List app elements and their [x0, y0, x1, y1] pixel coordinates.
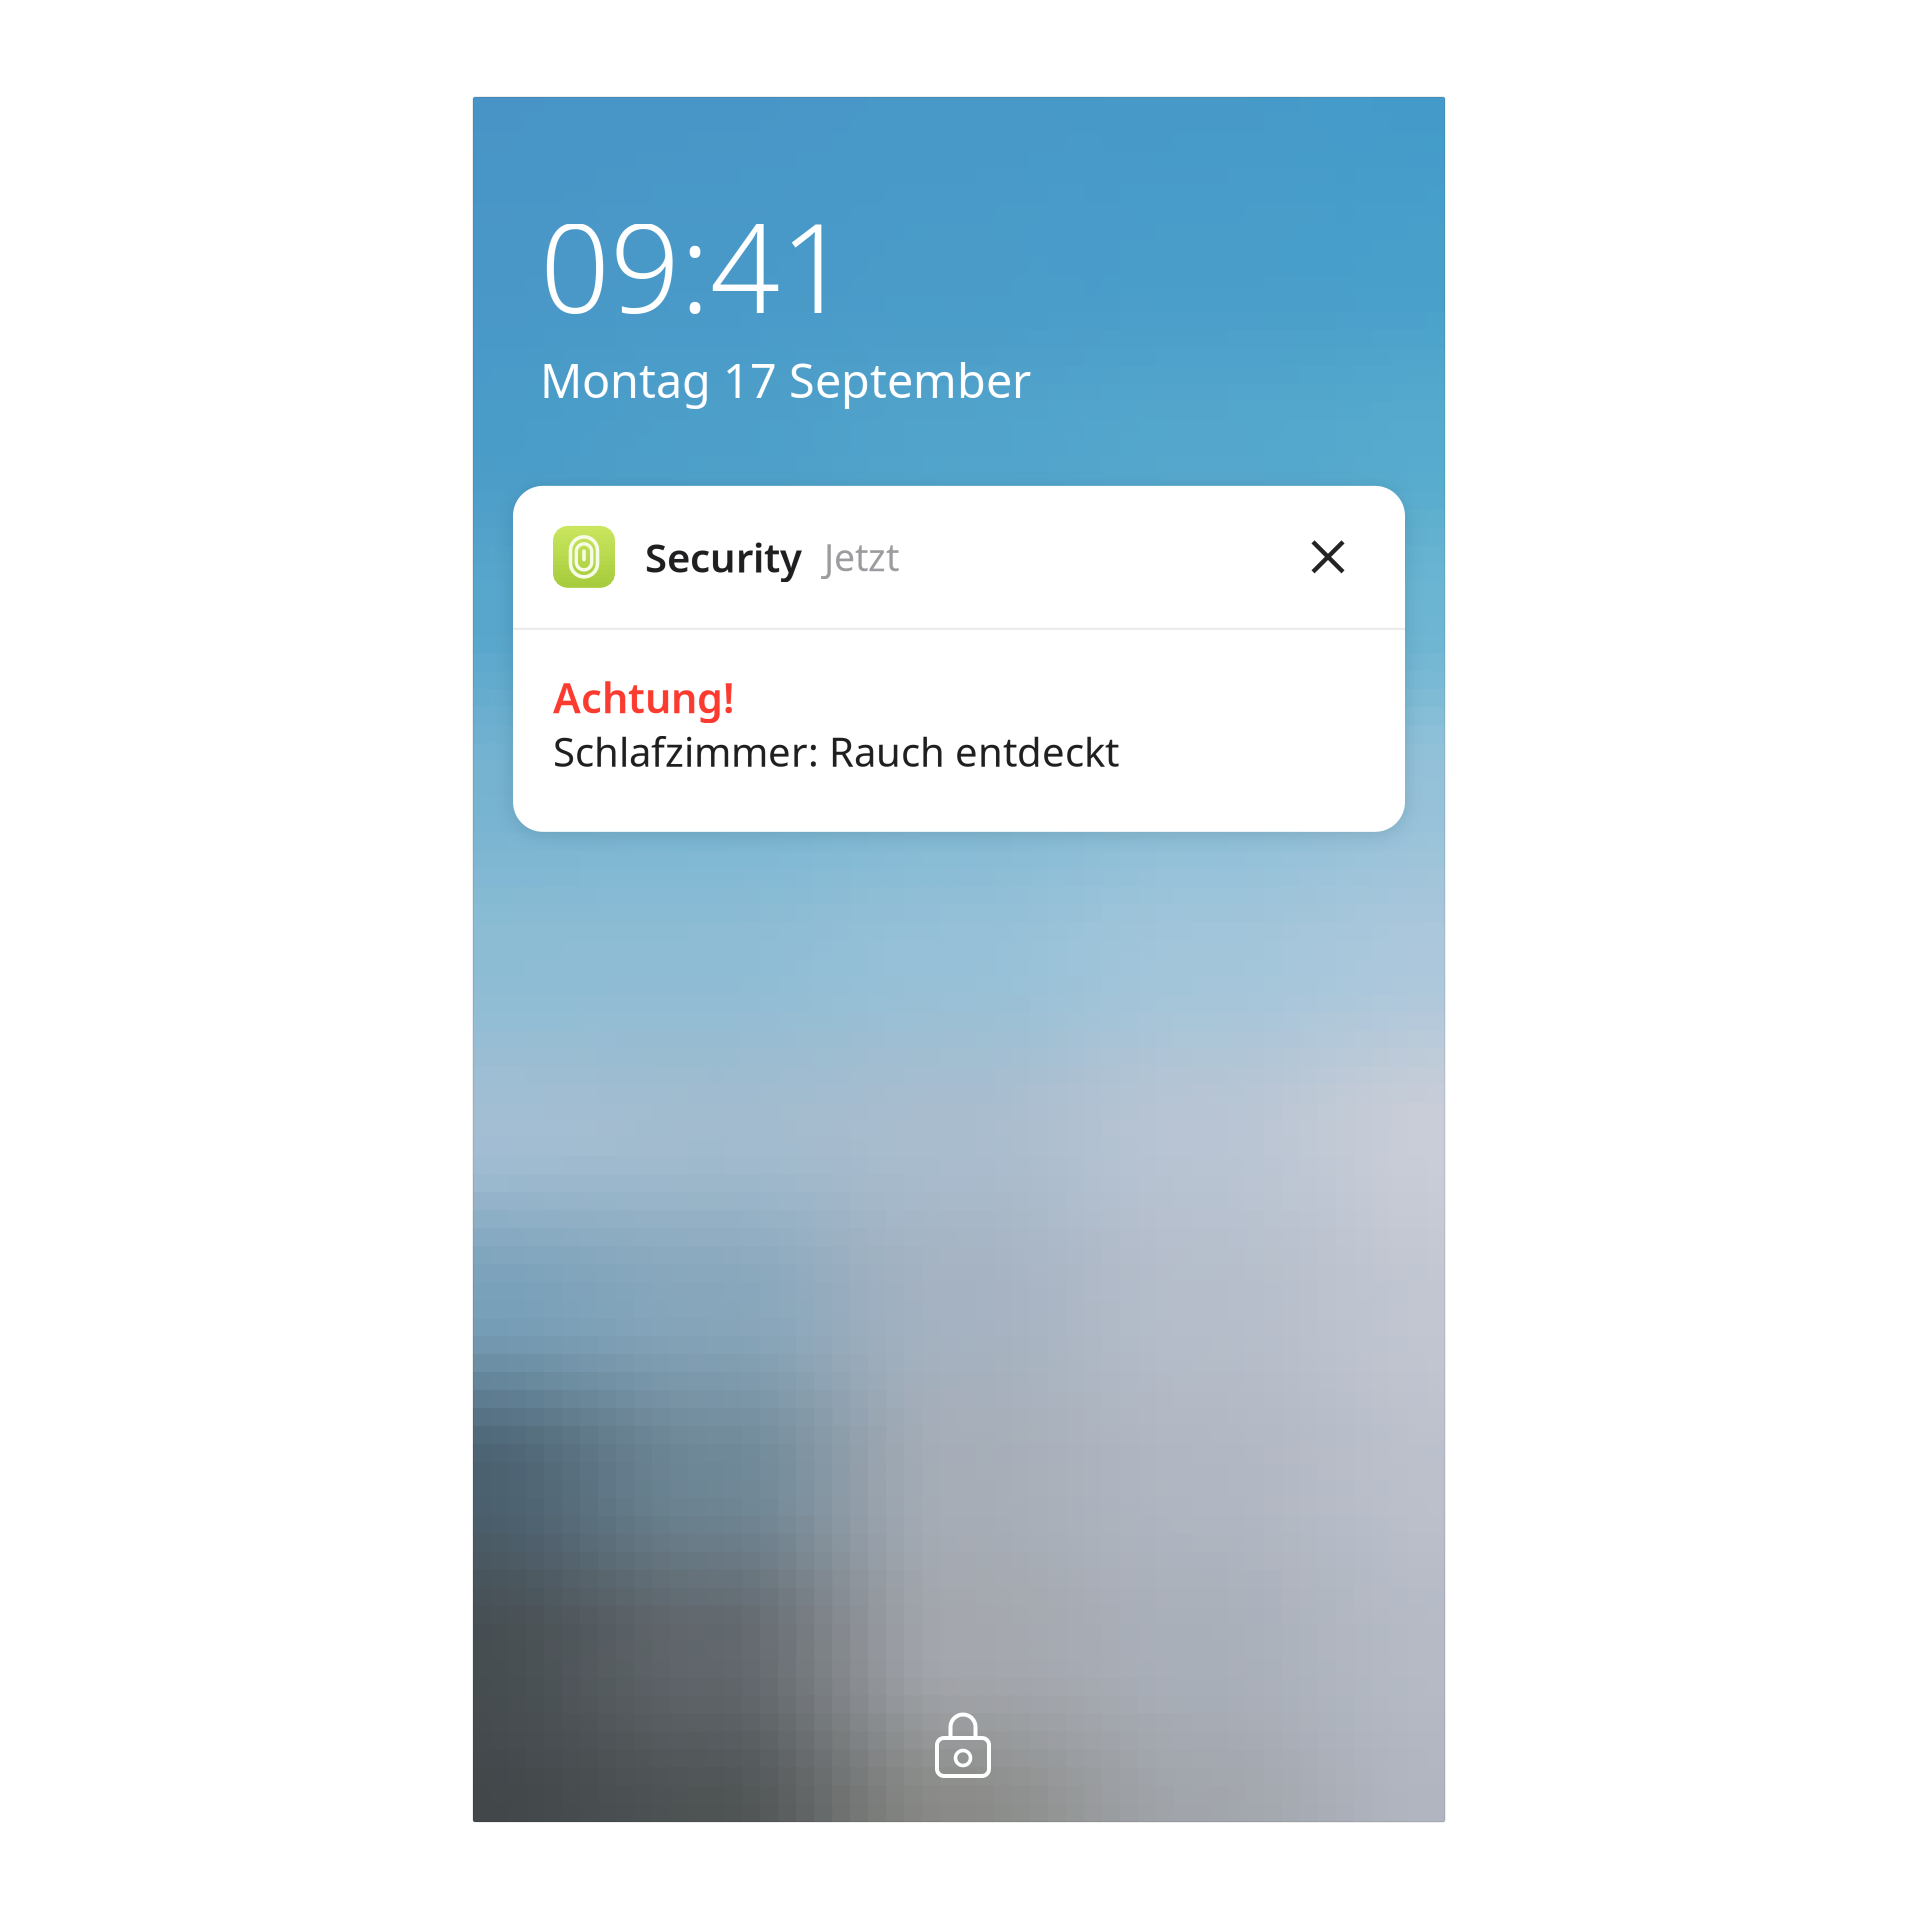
staticText: Security — [645, 530, 802, 583]
staticText: Achtung! — [553, 670, 734, 725]
staticText: Jetzt — [824, 532, 899, 582]
button[interactable]: Close notification — [1283, 512, 1373, 602]
staticText: Montag 17 September — [540, 349, 1031, 411]
button[interactable]: Security — [513, 486, 1405, 832]
staticText: Schlafzimmer: Rauch entdeckt — [553, 725, 1119, 778]
button[interactable]: Unlock — [904, 1686, 1022, 1822]
staticText: 09:41 — [540, 184, 850, 347]
